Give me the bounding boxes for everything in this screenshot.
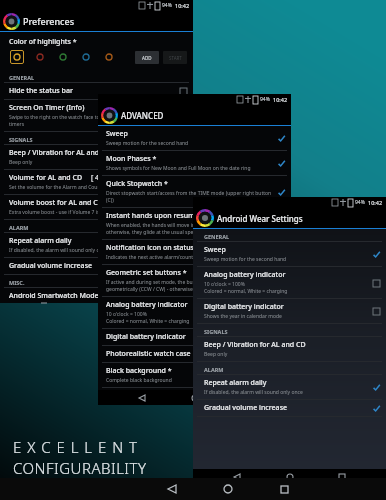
button[interactable]: Recents — [334, 469, 350, 485]
staticText: Beep / Vibration for AL and CD — [204, 340, 306, 350]
staticText: Beep only — [204, 351, 228, 358]
staticText: Photorealistic watch case — [106, 349, 191, 359]
button[interactable]: Beep / Vibration for AL and CD — [193, 337, 386, 362]
button[interactable]: Digital battery indicator — [98, 329, 291, 346]
button[interactable]: Repeat alarm daily — [193, 375, 386, 400]
button[interactable]: Repeat alarm daily — [0, 233, 193, 258]
staticText: Geometric set buttons * — [106, 268, 187, 278]
staticText: SIGNALS — [9, 136, 33, 143]
button[interactable]: Back — [157, 478, 187, 500]
staticText: Complete black background — [106, 377, 172, 384]
staticText: 10:42 — [175, 2, 190, 9]
button[interactable]: Instant hands upon resume — [98, 208, 291, 240]
button[interactable]: Photorealistic watch case — [98, 346, 291, 363]
staticText: GENERAL — [9, 74, 35, 81]
button[interactable]: Hide the status bar — [0, 83, 193, 100]
button[interactable]: Android Wear Settings — [193, 208, 386, 228]
staticText: Analog battery indicator — [204, 270, 286, 280]
staticText: Color of highlights * — [9, 37, 77, 47]
staticText: 10:42 — [368, 199, 383, 206]
staticText: Android Wear Settings — [217, 213, 303, 224]
staticText: [ 4 ] — [91, 173, 104, 183]
staticText: Screen On Timer (Info) — [9, 103, 85, 113]
staticText: If disabled, the alarm will sound only o… — [204, 389, 303, 396]
staticText: When enabled, the hands will move instan… — [106, 222, 266, 236]
staticText: Instant hands upon resume — [106, 211, 199, 221]
staticText: Repeat alarm daily — [204, 378, 267, 388]
staticText: Sweep — [106, 129, 128, 139]
staticText: Beep only — [9, 159, 33, 166]
staticText: 94% — [355, 199, 365, 206]
button[interactable]: Digital battery indicator — [193, 299, 386, 324]
staticText: Volume boost for AL and CD — [9, 198, 103, 208]
staticText: Black background * — [106, 366, 172, 376]
button[interactable]: Sweep — [98, 126, 291, 151]
button[interactable]: Highlight color — [33, 50, 47, 64]
button[interactable]: ADD — [135, 51, 159, 64]
button[interactable]: Highlight color — [102, 50, 116, 64]
staticText: 94% — [162, 2, 172, 9]
staticText: Direct stopwatch start/access from the T… — [106, 190, 276, 204]
staticText: Repeat alarm daily — [9, 236, 72, 246]
staticText: Hide the status bar — [9, 86, 73, 96]
staticText: Indicates the next active alarm/countdow… — [106, 254, 207, 261]
staticText: Shows the year in calendar mode — [204, 313, 282, 320]
button[interactable]: Volume for AL and CD — [0, 170, 193, 195]
button[interactable]: Moon Phases * — [98, 151, 291, 176]
staticText: Quick Stopwatch * — [106, 179, 168, 189]
staticText: Moon Phases * — [106, 154, 157, 164]
button[interactable]: Highlight color — [56, 50, 70, 64]
button[interactable]: Android Smartwatch Mode — [0, 288, 193, 303]
button[interactable]: Home — [213, 478, 243, 500]
button[interactable]: Screen On Timer (Info) — [0, 100, 193, 132]
button[interactable]: Back — [134, 390, 150, 405]
staticText: ALARM — [204, 366, 224, 373]
button[interactable]: Recents — [269, 478, 299, 500]
button[interactable]: Beep / Vibration for AL and CD — [0, 145, 193, 170]
staticText: 94% — [260, 96, 270, 103]
staticText: Preferences — [23, 15, 75, 27]
staticText: ADVANCED — [121, 110, 164, 121]
button[interactable]: ADVANCED — [98, 105, 291, 125]
staticText: CONFIGURABILITY — [13, 458, 147, 478]
button[interactable]: Amber highlight — [10, 50, 24, 64]
staticText: 10 o'clock = 100% Colored = normal, Whit… — [106, 311, 190, 325]
staticText: Gradual volume increase — [9, 261, 93, 271]
staticText: Set the volume for the Alarm and Countdo… — [9, 184, 116, 191]
staticText: If active and during set mode, the butto… — [106, 279, 245, 293]
staticText: 10:42 — [273, 96, 288, 103]
button[interactable]: Volume boost for AL and CD — [0, 195, 193, 220]
staticText: MISC. — [9, 279, 25, 286]
staticText: Android Smartwatch Mode — [9, 291, 99, 300]
button[interactable]: Quick Stopwatch * — [98, 176, 291, 208]
staticText: ALARM — [9, 224, 29, 231]
button[interactable]: Analog battery indicator — [193, 267, 386, 299]
staticText: GENERAL — [204, 233, 230, 240]
staticText: Notification icon on status bar — [106, 243, 208, 253]
button[interactable]: Geometric set buttons * — [98, 265, 291, 297]
button[interactable]: Home — [282, 469, 298, 485]
button[interactable]: Highlight color — [79, 50, 93, 64]
button[interactable]: Home — [187, 390, 203, 405]
button[interactable]: Black background * — [98, 363, 291, 388]
button[interactable]: Gradual volume increase — [193, 400, 386, 417]
button[interactable]: Notification icon on status bar — [98, 240, 291, 265]
button[interactable]: Sweep — [193, 242, 386, 267]
staticText: Swipe to the right on the watch face to … — [9, 114, 126, 128]
staticText: Extra volume boost - use if Volume 7 is … — [9, 209, 121, 216]
staticText: Digital battery indicator — [106, 332, 186, 342]
staticText: Gradual volume increase — [204, 403, 288, 413]
staticText: Sweep motion for the second hand — [106, 140, 189, 147]
button[interactable]: START — [163, 51, 187, 64]
staticText: Digital battery indicator — [204, 302, 284, 312]
button[interactable]: Gradual volume increase — [0, 258, 193, 275]
button[interactable]: Preferences — [0, 11, 193, 31]
button[interactable]: Back — [229, 469, 245, 485]
staticText: Shows symbols for New Moon and Full Moon… — [106, 165, 251, 172]
button[interactable]: Analog battery indicator — [98, 297, 291, 329]
staticText: Analog battery indicator — [106, 300, 188, 310]
staticText: Sweep — [204, 245, 226, 255]
staticText: SIGNALS — [204, 328, 228, 335]
button[interactable]: Recents — [239, 390, 255, 405]
staticText: Sweep motion for the second hand — [204, 256, 287, 263]
